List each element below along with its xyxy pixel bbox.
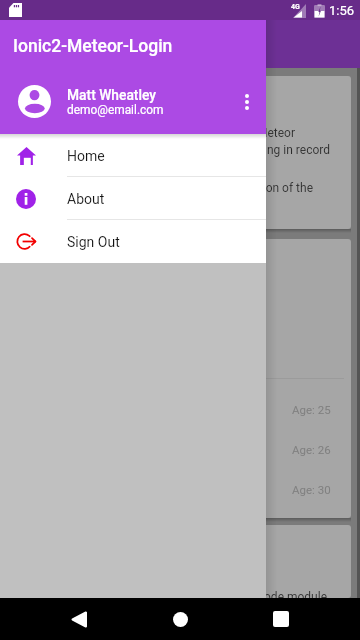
staticText: hybrid apps is changing in record [0,143,330,157]
button[interactable]: Home [0,134,266,177]
button[interactable]: More options [233,88,260,115]
staticText: Matt Wheatley [67,87,157,103]
staticText: Age: 25 [292,403,331,416]
button[interactable]: Recent apps [265,603,297,635]
staticText: Sign Out [67,234,120,250]
staticText: Ionic2-Meteor-Login [13,36,173,57]
staticText: Ionic 2 with Meteor [0,126,295,140]
button[interactable]: Home [164,603,196,635]
staticText: demo@email.com [67,103,164,117]
staticText: Age: 30 [292,483,331,496]
button[interactable]: Sign Out [0,220,266,263]
staticText: a short demonstration of the [0,181,313,195]
button[interactable]: Back [63,603,95,635]
staticText: 4G [291,3,300,11]
staticText: Home [67,148,105,164]
staticText: 1:56 [329,3,355,18]
staticText: About [67,191,105,207]
button[interactable]: About [0,177,266,220]
staticText: Installing the Meteor node module [0,590,327,604]
staticText: Age: 26 [292,443,331,456]
